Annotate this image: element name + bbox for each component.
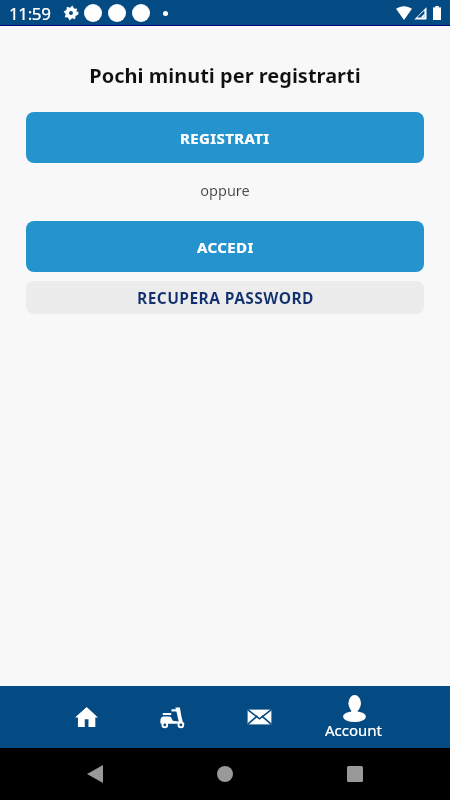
button[interactable]: Account — [302, 686, 406, 748]
button[interactable]: REGISTRATI — [26, 112, 424, 163]
staticText: 11:59 — [9, 2, 51, 25]
button[interactable]: Home — [190, 748, 260, 800]
staticText: Account — [325, 720, 383, 740]
button[interactable]: ACCEDI — [26, 221, 424, 272]
staticText: Pochi minuti per registrarti — [0, 62, 450, 89]
staticText: ACCEDI — [197, 237, 254, 257]
staticText: RECUPERA PASSWORD — [137, 287, 314, 308]
button[interactable]: Mail — [216, 686, 302, 748]
button[interactable]: Back — [0, 748, 190, 800]
button[interactable]: Recent apps — [260, 748, 450, 800]
button[interactable]: Scooter — [129, 686, 216, 748]
button[interactable]: RECUPERA PASSWORD — [26, 281, 424, 314]
button[interactable]: Home — [43, 686, 129, 748]
staticText: REGISTRATI — [180, 128, 270, 148]
staticText: oppure — [0, 180, 450, 200]
